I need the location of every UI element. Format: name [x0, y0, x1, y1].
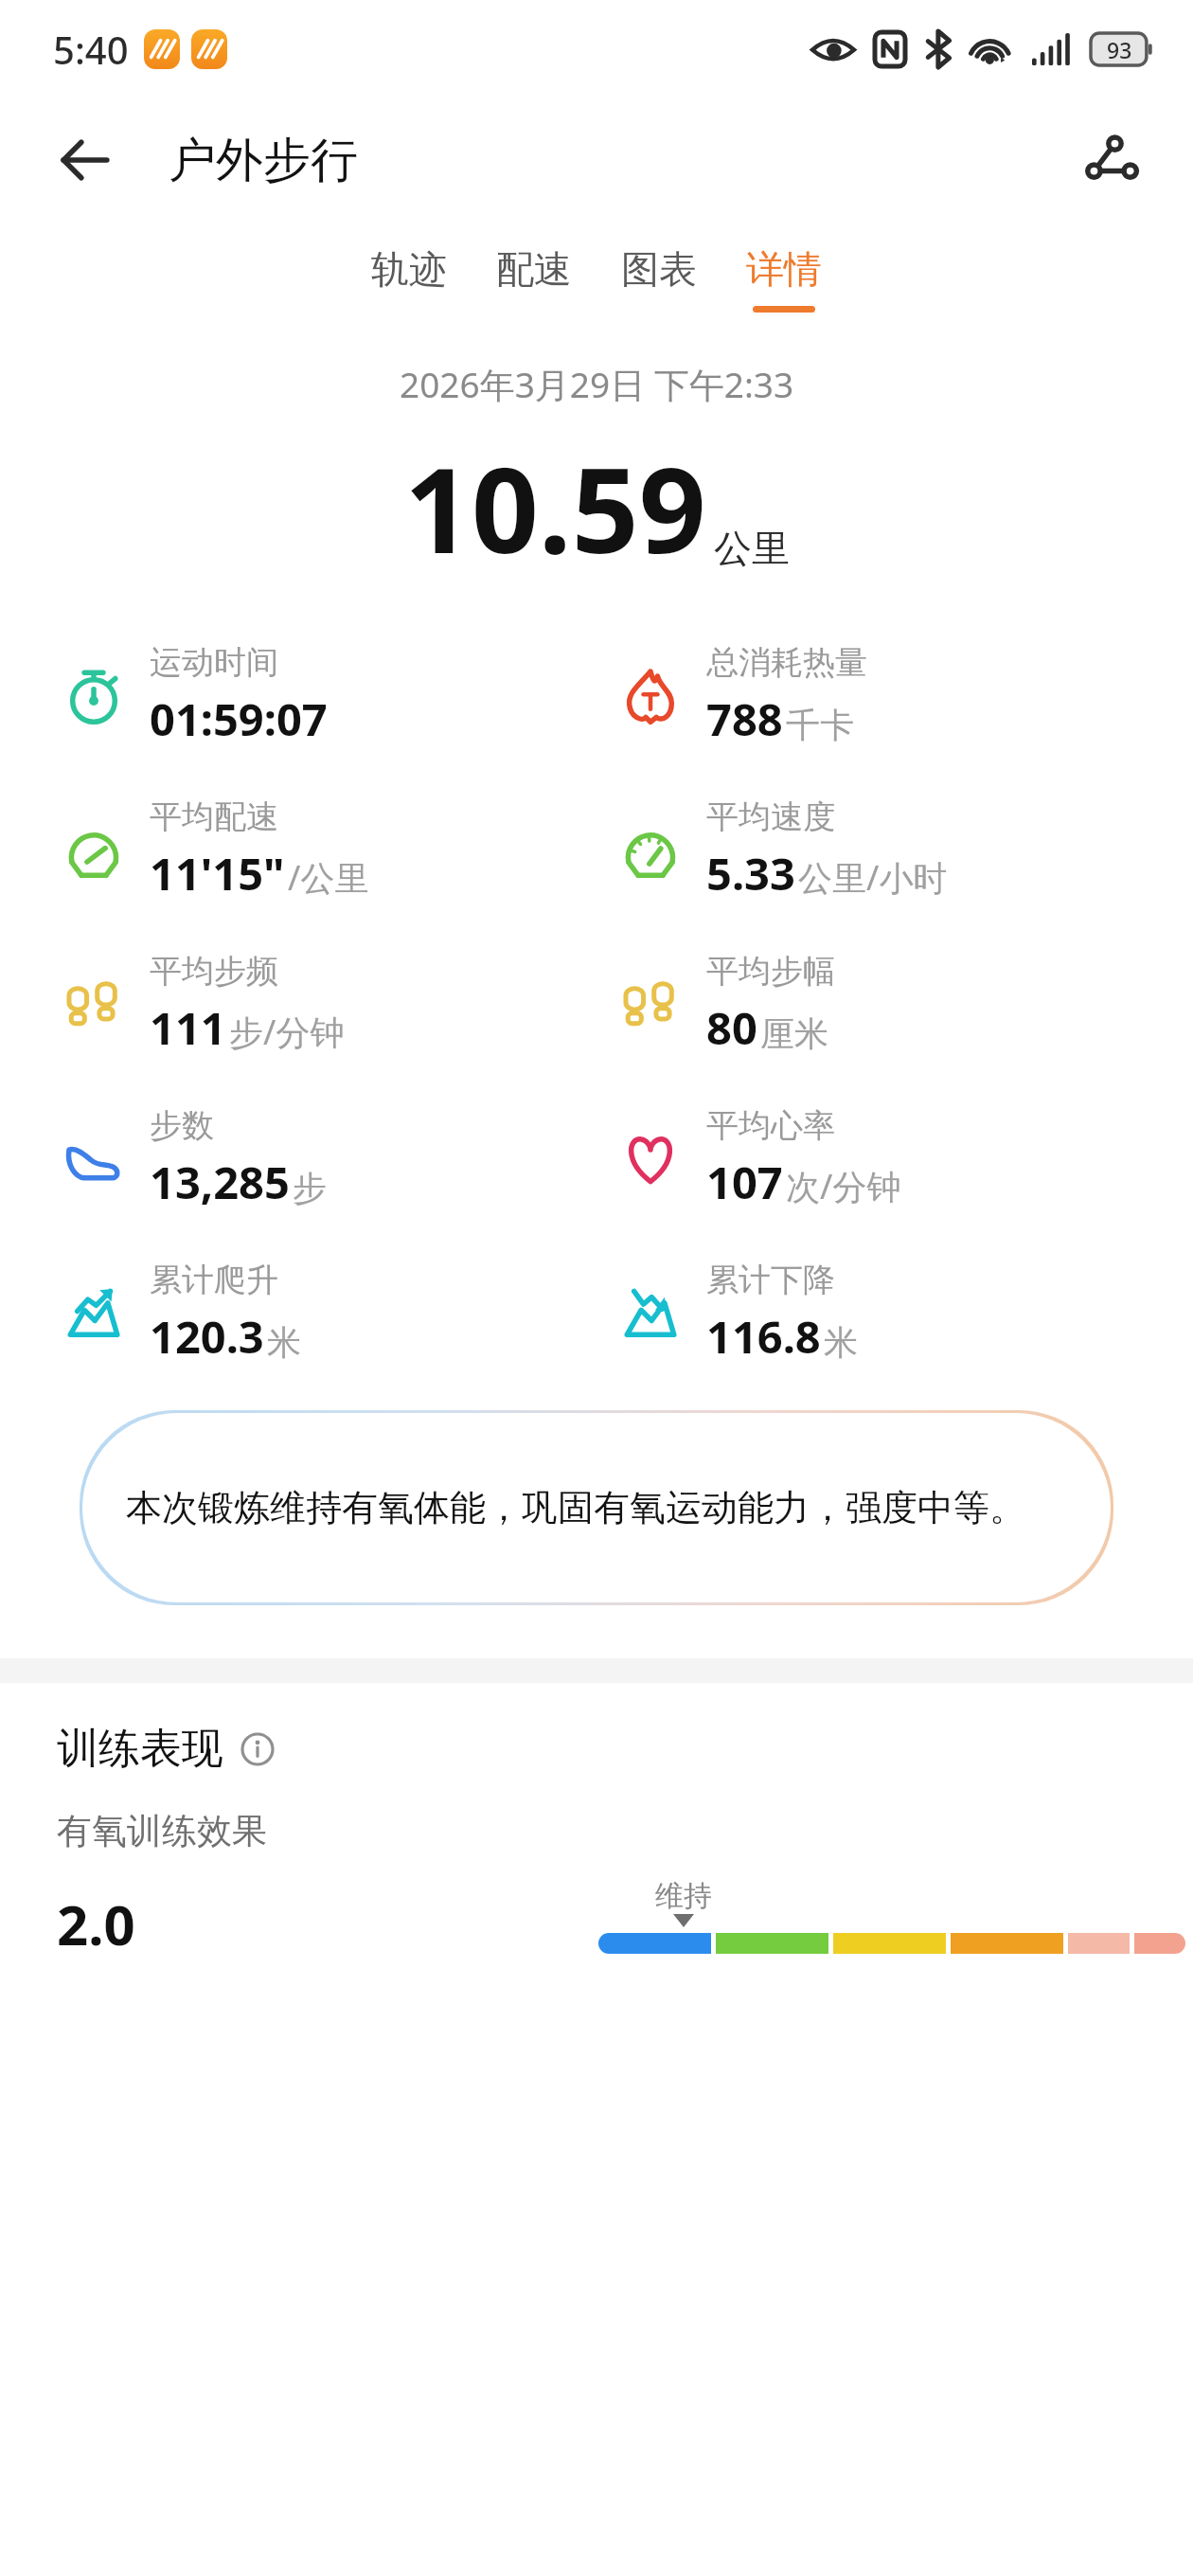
- staticText: 111: [150, 997, 226, 1058]
- staticText: 累计爬升: [150, 1260, 278, 1300]
- button[interactable]: 平均速度: [615, 796, 1193, 903]
- staticText: 平均步幅: [706, 951, 835, 992]
- button[interactable]: Back: [47, 122, 123, 198]
- staticText: 116.8: [706, 1306, 821, 1367]
- staticText: 米: [824, 1321, 858, 1364]
- staticText: 配速: [496, 245, 572, 293]
- staticText: 训练表现: [57, 1723, 223, 1775]
- staticText: 平均配速: [150, 796, 278, 837]
- staticText: 总消耗热量: [706, 642, 867, 683]
- staticText: 厘米: [760, 1012, 828, 1055]
- staticText: 次/分钟: [786, 1163, 901, 1209]
- button[interactable]: 本次锻炼维持有氧体能，巩固有氧运动能力，强度中等。: [82, 1413, 1111, 1602]
- staticText: 93: [1107, 35, 1132, 64]
- button[interactable]: 累计下降: [615, 1260, 1193, 1367]
- staticText: 累计下降: [706, 1260, 835, 1300]
- staticText: 788: [706, 689, 783, 749]
- staticText: 11'15": [150, 843, 285, 903]
- staticText: 13,285: [150, 1152, 290, 1212]
- button[interactable]: 累计爬升: [59, 1260, 596, 1367]
- button[interactable]: 运动时间: [59, 642, 596, 749]
- staticText: 5:40: [53, 24, 129, 75]
- staticText: 千卡: [786, 704, 854, 746]
- staticText: 本次锻炼维持有氧体能，巩固有氧运动能力，强度中等。: [126, 1485, 1025, 1530]
- staticText: 步数: [150, 1105, 214, 1146]
- staticText: 01:59:07: [150, 689, 328, 749]
- staticText: 详情: [746, 245, 822, 293]
- button[interactable]: 图表: [596, 240, 721, 312]
- button[interactable]: 平均步频: [59, 951, 596, 1058]
- staticText: 运动时间: [150, 642, 278, 683]
- staticText: 有氧训练效果: [57, 1809, 267, 1853]
- button[interactable]: 轨迹: [347, 240, 472, 312]
- staticText: 5.33: [706, 843, 795, 903]
- staticText: 步/分钟: [229, 1009, 345, 1055]
- staticText: 维持: [655, 1878, 712, 1914]
- staticText: 80: [706, 997, 757, 1058]
- staticText: 107: [706, 1152, 783, 1212]
- staticText: /公里: [288, 854, 369, 901]
- staticText: 步: [293, 1167, 327, 1209]
- staticText: 户外步行: [169, 131, 358, 190]
- staticText: 平均步频: [150, 951, 278, 992]
- button[interactable]: 总消耗热量: [615, 642, 1193, 749]
- button[interactable]: 配速: [472, 240, 596, 312]
- button[interactable]: Info: [237, 1728, 278, 1770]
- staticText: 公里: [714, 525, 790, 572]
- button[interactable]: Share: [1074, 122, 1149, 198]
- button[interactable]: 步数: [59, 1105, 596, 1212]
- button[interactable]: 平均心率: [615, 1105, 1193, 1212]
- staticText: 10.59: [404, 427, 706, 587]
- staticText: 平均速度: [706, 796, 835, 837]
- button[interactable]: 详情: [721, 240, 846, 318]
- staticText: 2.0: [57, 1887, 135, 1961]
- staticText: 轨迹: [371, 245, 447, 293]
- button[interactable]: 平均配速: [59, 796, 596, 903]
- staticText: 120.3: [150, 1306, 264, 1367]
- button[interactable]: 平均步幅: [615, 951, 1193, 1058]
- staticText: 图表: [621, 245, 697, 293]
- staticText: 米: [267, 1321, 301, 1364]
- staticText: 2026年3月29日 下午2:33: [400, 360, 794, 408]
- staticText: 公里/小时: [798, 854, 948, 901]
- staticText: 平均心率: [706, 1105, 835, 1146]
